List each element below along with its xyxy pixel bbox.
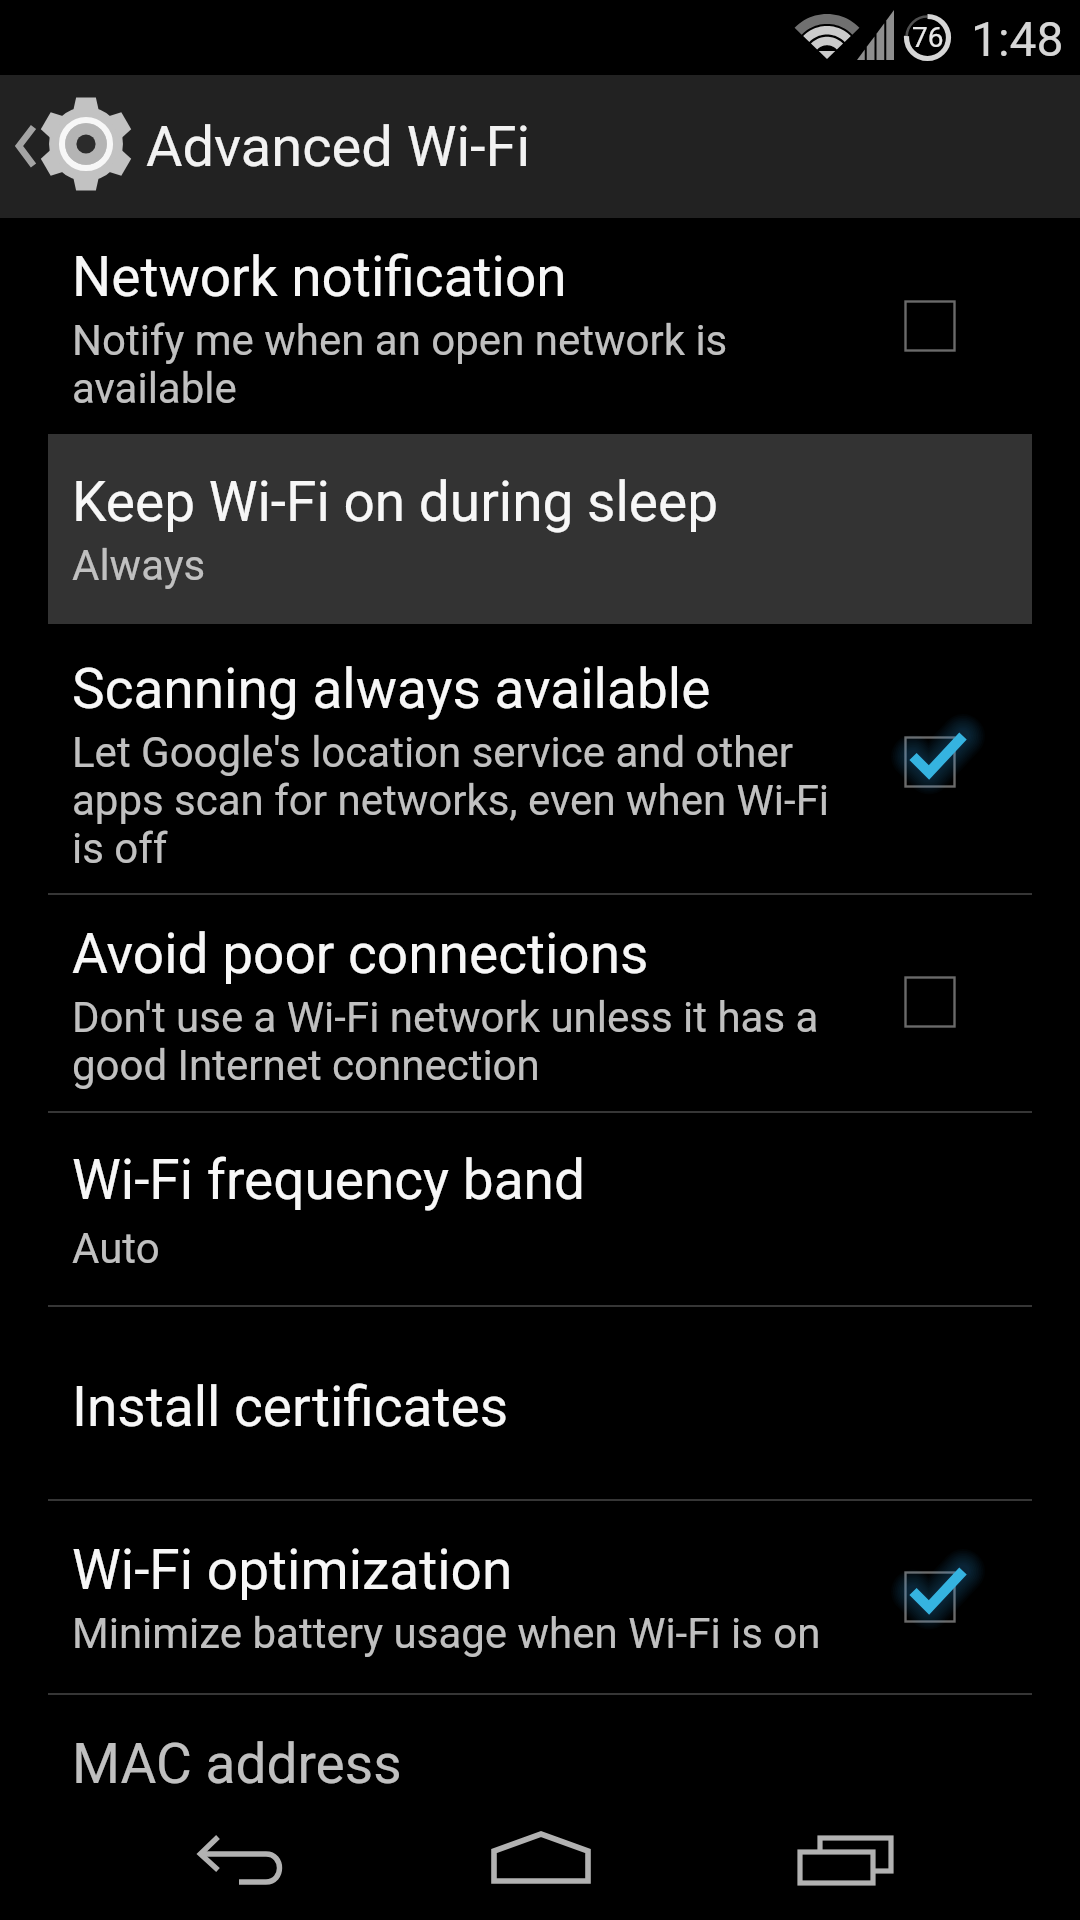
staticText: Wi-Fi optimization [72,1538,513,1602]
button[interactable]: Install certificates [0,1306,1080,1500]
button[interactable]: Unchecked [874,946,986,1058]
button[interactable]: Back [130,1795,350,1920]
button[interactable]: Checked [874,706,986,818]
staticText: Scanning always available [72,657,711,721]
staticText: Always [72,541,862,590]
button[interactable]: Checked [874,1541,986,1653]
button[interactable]: Wi-Fi frequency band [0,1112,1080,1306]
staticText: Minimize battery usage when Wi-Fi is on [72,1609,862,1658]
button[interactable]: MAC address [0,1694,1080,1888]
staticText: Keep Wi-Fi on during sleep [72,470,719,534]
button[interactable]: Avoid poor connections [0,894,1080,1112]
staticText: 76 [912,21,944,54]
staticText: MAC address [72,1732,402,1796]
staticText: 1:48 [971,11,1064,67]
button[interactable]: Home [430,1795,650,1920]
staticText: Install certificates [72,1375,509,1439]
button[interactable]: Keep Wi-Fi on during sleep [48,434,1032,624]
staticText: Auto [72,1224,862,1273]
staticText: Wi-Fi frequency band [72,1148,585,1212]
staticText: Avoid poor connections [72,922,649,986]
button[interactable]: Network notification [0,218,1080,434]
button[interactable] [0,75,560,218]
staticText: Advanced Wi-Fi [146,114,531,180]
button[interactable]: Unchecked [874,270,986,382]
button[interactable]: Recent apps [735,1795,955,1920]
staticText: Notify me when an open network is availa… [72,316,752,414]
staticText: Don't use a Wi-Fi network unless it has … [72,993,842,1091]
staticText: Let Google's location service and other … [72,728,862,874]
button[interactable]: Wi-Fi optimization [0,1500,1080,1694]
staticText: Network notification [72,245,567,309]
other: Navigate up [16,122,42,174]
button[interactable]: Scanning always available [0,624,1080,894]
